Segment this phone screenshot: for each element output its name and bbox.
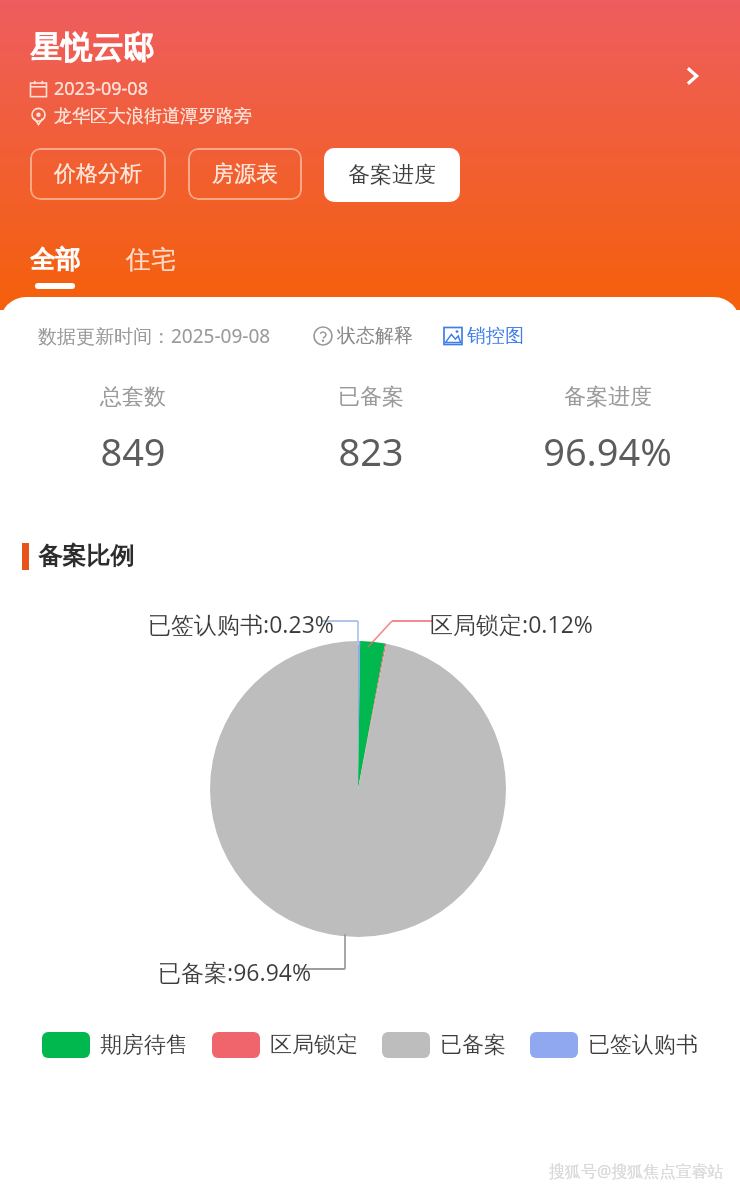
button[interactable]: 已备案: [252, 383, 489, 477]
staticText: 状态解释: [337, 324, 413, 348]
staticText: 区局锁定:0.12%: [430, 608, 593, 639]
staticText: 823: [338, 425, 404, 477]
button[interactable]: 已备案: [382, 1031, 506, 1059]
button[interactable]: 总套数: [14, 383, 252, 477]
staticText: 已签认购书:0.23%: [148, 608, 334, 639]
staticText: 房源表: [212, 160, 278, 188]
staticText: 数据更新时间：2025-09-08: [38, 323, 271, 349]
staticText: 2023-09-08: [54, 76, 148, 101]
button[interactable]: 全部: [18, 240, 92, 293]
staticText: 星悦云邸: [30, 28, 154, 67]
staticText: 96.94%: [543, 425, 672, 477]
button[interactable]: 价格分析: [30, 148, 166, 200]
button[interactable]: 状态解释: [313, 324, 413, 348]
staticText: 销控图: [467, 324, 524, 348]
button[interactable]: 房源表: [188, 148, 302, 200]
staticText: 备案进度: [348, 161, 436, 189]
button[interactable]: 住宅: [114, 240, 188, 293]
staticText: 价格分析: [54, 160, 142, 188]
staticText: 已签认购书: [588, 1031, 698, 1059]
staticText: 住宅: [126, 244, 176, 275]
staticText: 备案比例: [38, 541, 134, 571]
staticText: 区局锁定: [270, 1031, 358, 1059]
staticText: 全部: [30, 244, 80, 275]
staticText: 搜狐号@搜狐焦点宣睿站: [549, 1160, 724, 1182]
staticText: 849: [100, 425, 166, 477]
button[interactable]: 备案进度: [324, 148, 460, 202]
staticText: 已备案: [338, 383, 404, 411]
button[interactable]: 备案进度: [489, 383, 726, 477]
staticText: 龙华区大浪街道潭罗路旁: [54, 105, 252, 128]
button[interactable]: 已签认购书: [530, 1031, 698, 1059]
button[interactable]: 区局锁定: [212, 1031, 358, 1059]
staticText: 已备案: [440, 1031, 506, 1059]
button[interactable]: 销控图: [443, 324, 524, 348]
button[interactable]: 查看详情: [670, 54, 714, 98]
staticText: 备案进度: [564, 383, 652, 411]
staticText: 已备案:96.94%: [158, 956, 312, 987]
button[interactable]: 期房待售: [42, 1031, 188, 1059]
staticText: 期房待售: [100, 1031, 188, 1059]
staticText: 总套数: [100, 383, 166, 411]
